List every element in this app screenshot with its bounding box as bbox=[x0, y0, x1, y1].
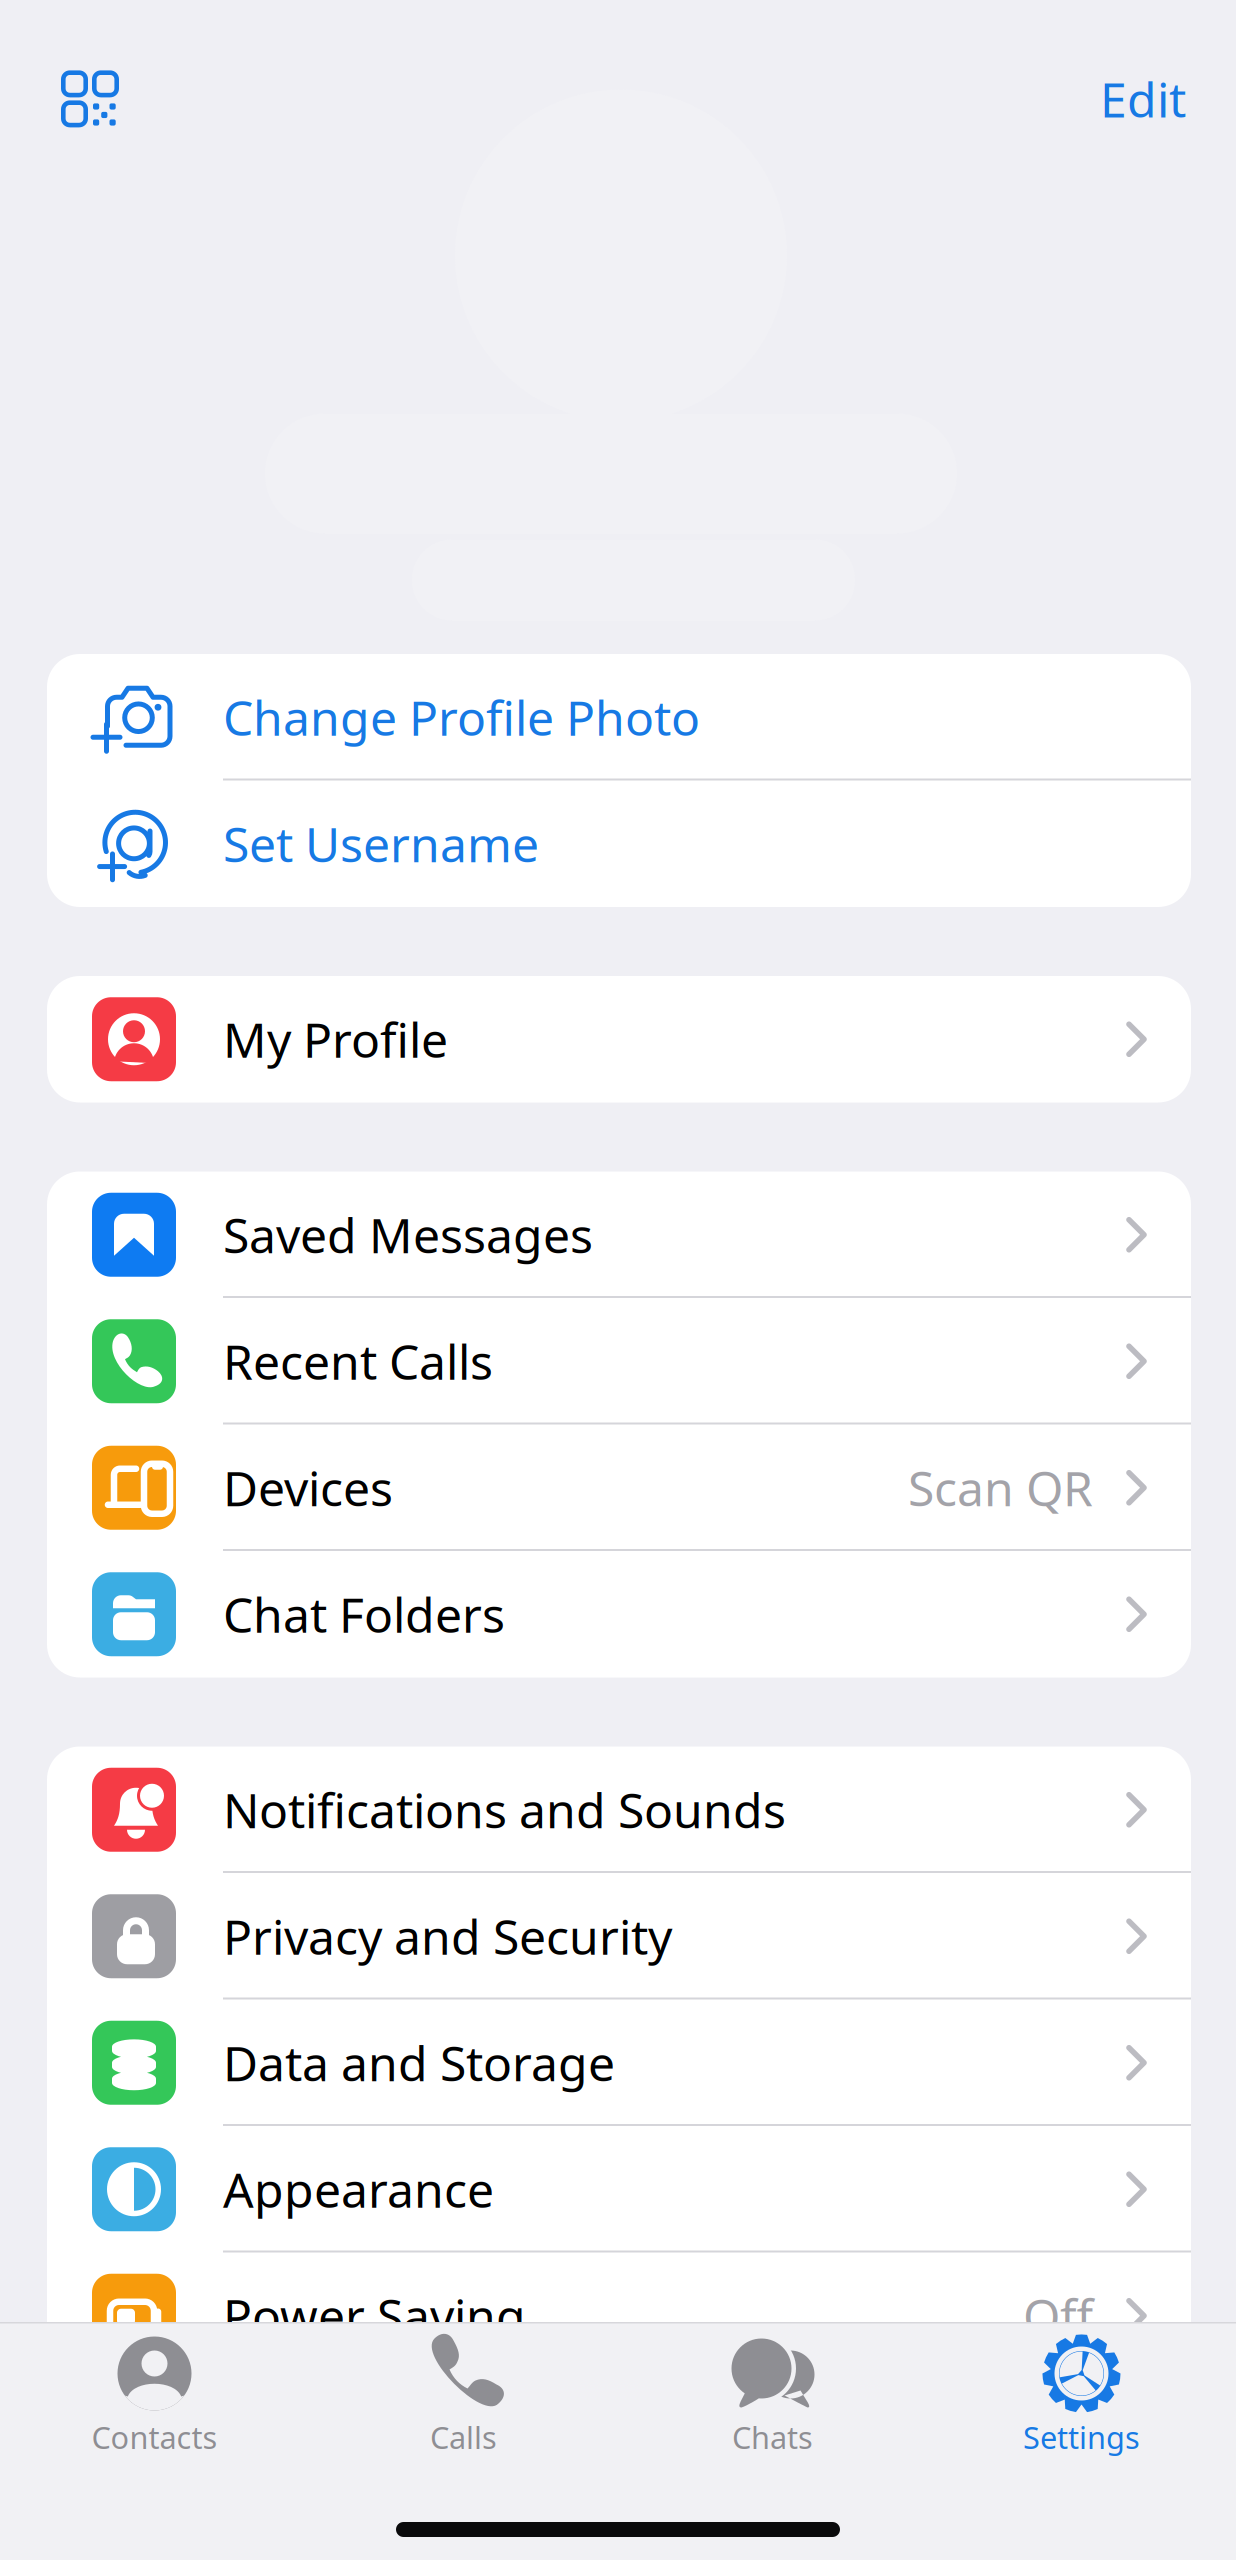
staticText: Notifications and Sounds bbox=[223, 1778, 786, 1842]
button[interactable]: Contacts bbox=[0, 2334, 309, 2464]
staticText: Calls bbox=[430, 2417, 497, 2457]
staticText: Data and Storage bbox=[223, 2031, 615, 2095]
staticText: Devices bbox=[223, 1456, 393, 1520]
staticText: Contacts bbox=[91, 2417, 217, 2457]
button[interactable]: Chat Folders bbox=[47, 1551, 1191, 1677]
button[interactable]: Appearance bbox=[47, 2126, 1191, 2252]
staticText: Change Profile Photo bbox=[223, 685, 700, 749]
staticText: Power Saving bbox=[223, 2284, 526, 2348]
button[interactable]: Settings bbox=[927, 2334, 1236, 2464]
staticText: Recent Calls bbox=[223, 1329, 493, 1393]
staticText: Set Username bbox=[223, 812, 539, 876]
staticText: My Profile bbox=[223, 1007, 448, 1071]
button[interactable]: Data and Storage bbox=[47, 1999, 1191, 2126]
button[interactable]: Calls bbox=[309, 2334, 618, 2464]
staticText: Scan QR bbox=[908, 1456, 1093, 1520]
staticText: Privacy and Security bbox=[223, 1904, 672, 1968]
staticText: Saved Messages bbox=[223, 1203, 593, 1267]
button[interactable]: Notifications and Sounds bbox=[47, 1746, 1191, 1873]
staticText: Chats bbox=[732, 2417, 813, 2457]
button[interactable]: Scan QR code bbox=[39, 58, 140, 139]
staticText: Settings bbox=[1023, 2417, 1140, 2457]
button[interactable]: Devices bbox=[47, 1424, 1191, 1551]
button[interactable]: Edit bbox=[1078, 49, 1208, 149]
button[interactable]: Set Username bbox=[47, 780, 1191, 907]
button[interactable]: Change Profile Photo bbox=[47, 654, 1191, 780]
staticText: Chat Folders bbox=[223, 1582, 505, 1646]
button[interactable]: Chats bbox=[618, 2334, 927, 2464]
button[interactable]: My Profile bbox=[47, 976, 1191, 1102]
button[interactable]: Power Saving bbox=[47, 2252, 1191, 2379]
button[interactable]: Saved Messages bbox=[47, 1171, 1191, 1298]
button[interactable]: Privacy and Security bbox=[47, 1873, 1191, 1999]
staticText: Off bbox=[1023, 2284, 1093, 2348]
staticText: Appearance bbox=[223, 2157, 494, 2221]
button[interactable]: Recent Calls bbox=[47, 1298, 1191, 1424]
staticText: Edit bbox=[1100, 67, 1186, 131]
